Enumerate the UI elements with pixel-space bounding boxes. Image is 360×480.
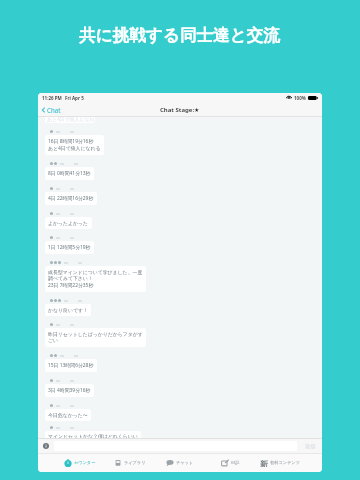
- staticText: よかったよかった: [48, 220, 89, 226]
- staticText: 1日 12時間5分19秒: [48, 244, 91, 251]
- staticText: 4日 22時間16分29秒: [48, 195, 94, 202]
- button[interactable]: 4日 22時間16分29秒: [45, 192, 97, 205]
- button[interactable]: 今日危なかった〜: [45, 409, 91, 421]
- button[interactable]: 新: [255, 453, 305, 472]
- button[interactable]: 15日 13時間6分28秒: [45, 359, 97, 372]
- button[interactable]: 1日 12時間5分19秒: [45, 241, 94, 254]
- button[interactable]: カウンター: [55, 453, 105, 472]
- button[interactable]: Add attachment: [43, 443, 49, 449]
- staticText: Chat: [47, 106, 61, 114]
- staticText: 今日危なかった〜: [48, 412, 88, 418]
- button[interactable]: 16日 8時間19分16秒 あと4日で狼人になれる: [45, 135, 104, 155]
- button[interactable]: 日記: [205, 453, 255, 472]
- staticText: 15日 13時間6分28秒: [48, 362, 94, 369]
- button[interactable]: 昨日リセットしたばっかりだからフタがす ごい: [45, 328, 146, 347]
- staticText: 成長型マインドについて学びました。一度 調べてみて下さい！ 23日 7時間22分…: [48, 269, 143, 289]
- staticText: かなり良いです！: [48, 307, 88, 313]
- staticText: 有料コンテンツ: [270, 460, 300, 465]
- staticText: マインドセットかな？僕はどれくらいい: [48, 433, 138, 438]
- staticText: 3日 4時間39分16秒: [48, 387, 91, 394]
- staticText: チャット: [176, 460, 194, 465]
- button[interactable]: 成長型マインドについて学びました。一度 調べてみて下さい！ 23日 7時間22分…: [45, 266, 146, 292]
- staticText: カウンター: [74, 460, 96, 465]
- staticText: Chat Stage:★: [160, 106, 200, 114]
- staticText: 8日 0時間41分13秒: [48, 170, 91, 177]
- staticText: 送信: [305, 443, 316, 450]
- staticText: ライブラリ: [124, 460, 146, 465]
- staticText: 16日 8時間19分16秒 あと4日で狼人になれる: [48, 138, 101, 152]
- button[interactable]: かなり良いです！: [45, 304, 91, 316]
- button[interactable]: マインドセットかな？僕はどれくらいい: [45, 431, 141, 438]
- button[interactable]: 3日 4時間39分16秒: [45, 384, 94, 397]
- button[interactable]: Chat: [38, 103, 65, 117]
- staticText: 日記: [231, 460, 240, 465]
- staticText: 昨日リセットしたばっかりだからフタがす ごい: [48, 331, 143, 344]
- staticText: 11:26 PM: [42, 95, 62, 101]
- staticText: 新: [260, 459, 268, 467]
- staticText: 100%: [294, 95, 306, 101]
- staticText: 共に挑戦する同士達と交流: [79, 25, 280, 46]
- staticText: あと4日で狼人になれる: [47, 117, 95, 122]
- button[interactable]: チャット: [155, 453, 205, 472]
- button[interactable]: 送信: [305, 443, 316, 450]
- button[interactable]: よかったよかった: [45, 217, 92, 229]
- button[interactable]: 8日 0時間41分13秒: [45, 167, 94, 180]
- button[interactable]: ライブラリ: [105, 453, 155, 472]
- staticText: Fri Apr 5: [65, 95, 84, 101]
